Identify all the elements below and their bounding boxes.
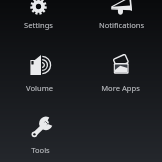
button[interactable]: Notifications <box>81 0 162 32</box>
staticText: Tools <box>0 145 81 155</box>
staticText: Notifications <box>81 20 162 30</box>
button[interactable]: More Apps <box>80 47 161 96</box>
button[interactable]: Volume <box>0 47 80 95</box>
staticText: Volume <box>0 83 80 93</box>
staticText: Settings <box>0 20 79 30</box>
button[interactable]: Tools <box>0 109 81 158</box>
staticText: More Apps <box>80 83 161 93</box>
button[interactable]: Settings <box>0 0 79 32</box>
